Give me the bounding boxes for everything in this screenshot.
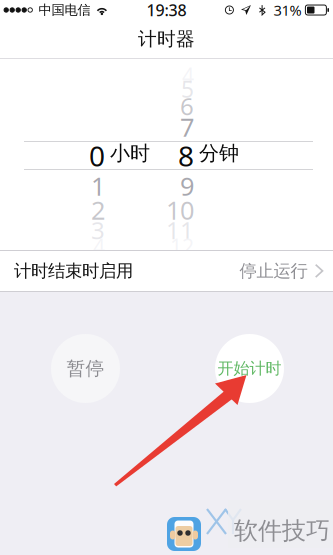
staticText: 5 [181,74,194,104]
staticText: 4 [182,61,194,89]
staticText: 4 [93,232,105,260]
button[interactable]: 暂停 [51,334,120,403]
staticText: 暂停 [66,357,104,380]
staticText: 停止运行 [239,260,307,282]
staticText: 8 [178,137,194,174]
staticText: 中国电信 [38,2,90,18]
staticText: 19:38 [146,0,186,21]
staticText: 开始计时 [217,359,281,378]
staticText: 计时器 [138,27,195,50]
button[interactable]: 开始计时 [215,334,284,403]
staticText: 软件技巧 [234,516,330,545]
button[interactable]: 计时结束时启用 [0,251,333,291]
staticText: 0 [89,137,105,174]
staticText: 10 [166,193,194,227]
staticText: 11 [166,214,194,246]
staticText: 7 [180,110,194,144]
staticText: 12 [170,232,194,260]
staticText: 1 [91,169,105,203]
staticText: 分钟 [199,141,239,166]
staticText: 9 [180,169,194,203]
staticText: 计时结束时启用 [14,260,133,282]
staticText: 6 [180,90,194,122]
staticText: 小时 [110,141,150,166]
staticText: 2 [91,193,105,227]
staticText: 31% [273,0,301,20]
staticText: 3 [91,214,105,246]
